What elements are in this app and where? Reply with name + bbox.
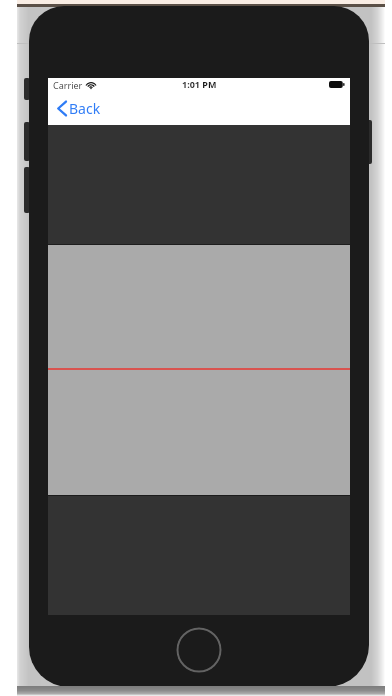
button[interactable]: Back (53, 96, 105, 121)
button[interactable]: Volume up (24, 122, 30, 161)
button[interactable]: Power (366, 120, 372, 164)
button[interactable]: Silent switch (24, 78, 30, 100)
staticText: Back (69, 99, 101, 118)
staticText: Carrier (53, 79, 83, 91)
button[interactable]: Home (176, 627, 222, 673)
button[interactable]: Volume down (24, 167, 30, 213)
staticText: 1:01 PM (182, 78, 217, 90)
